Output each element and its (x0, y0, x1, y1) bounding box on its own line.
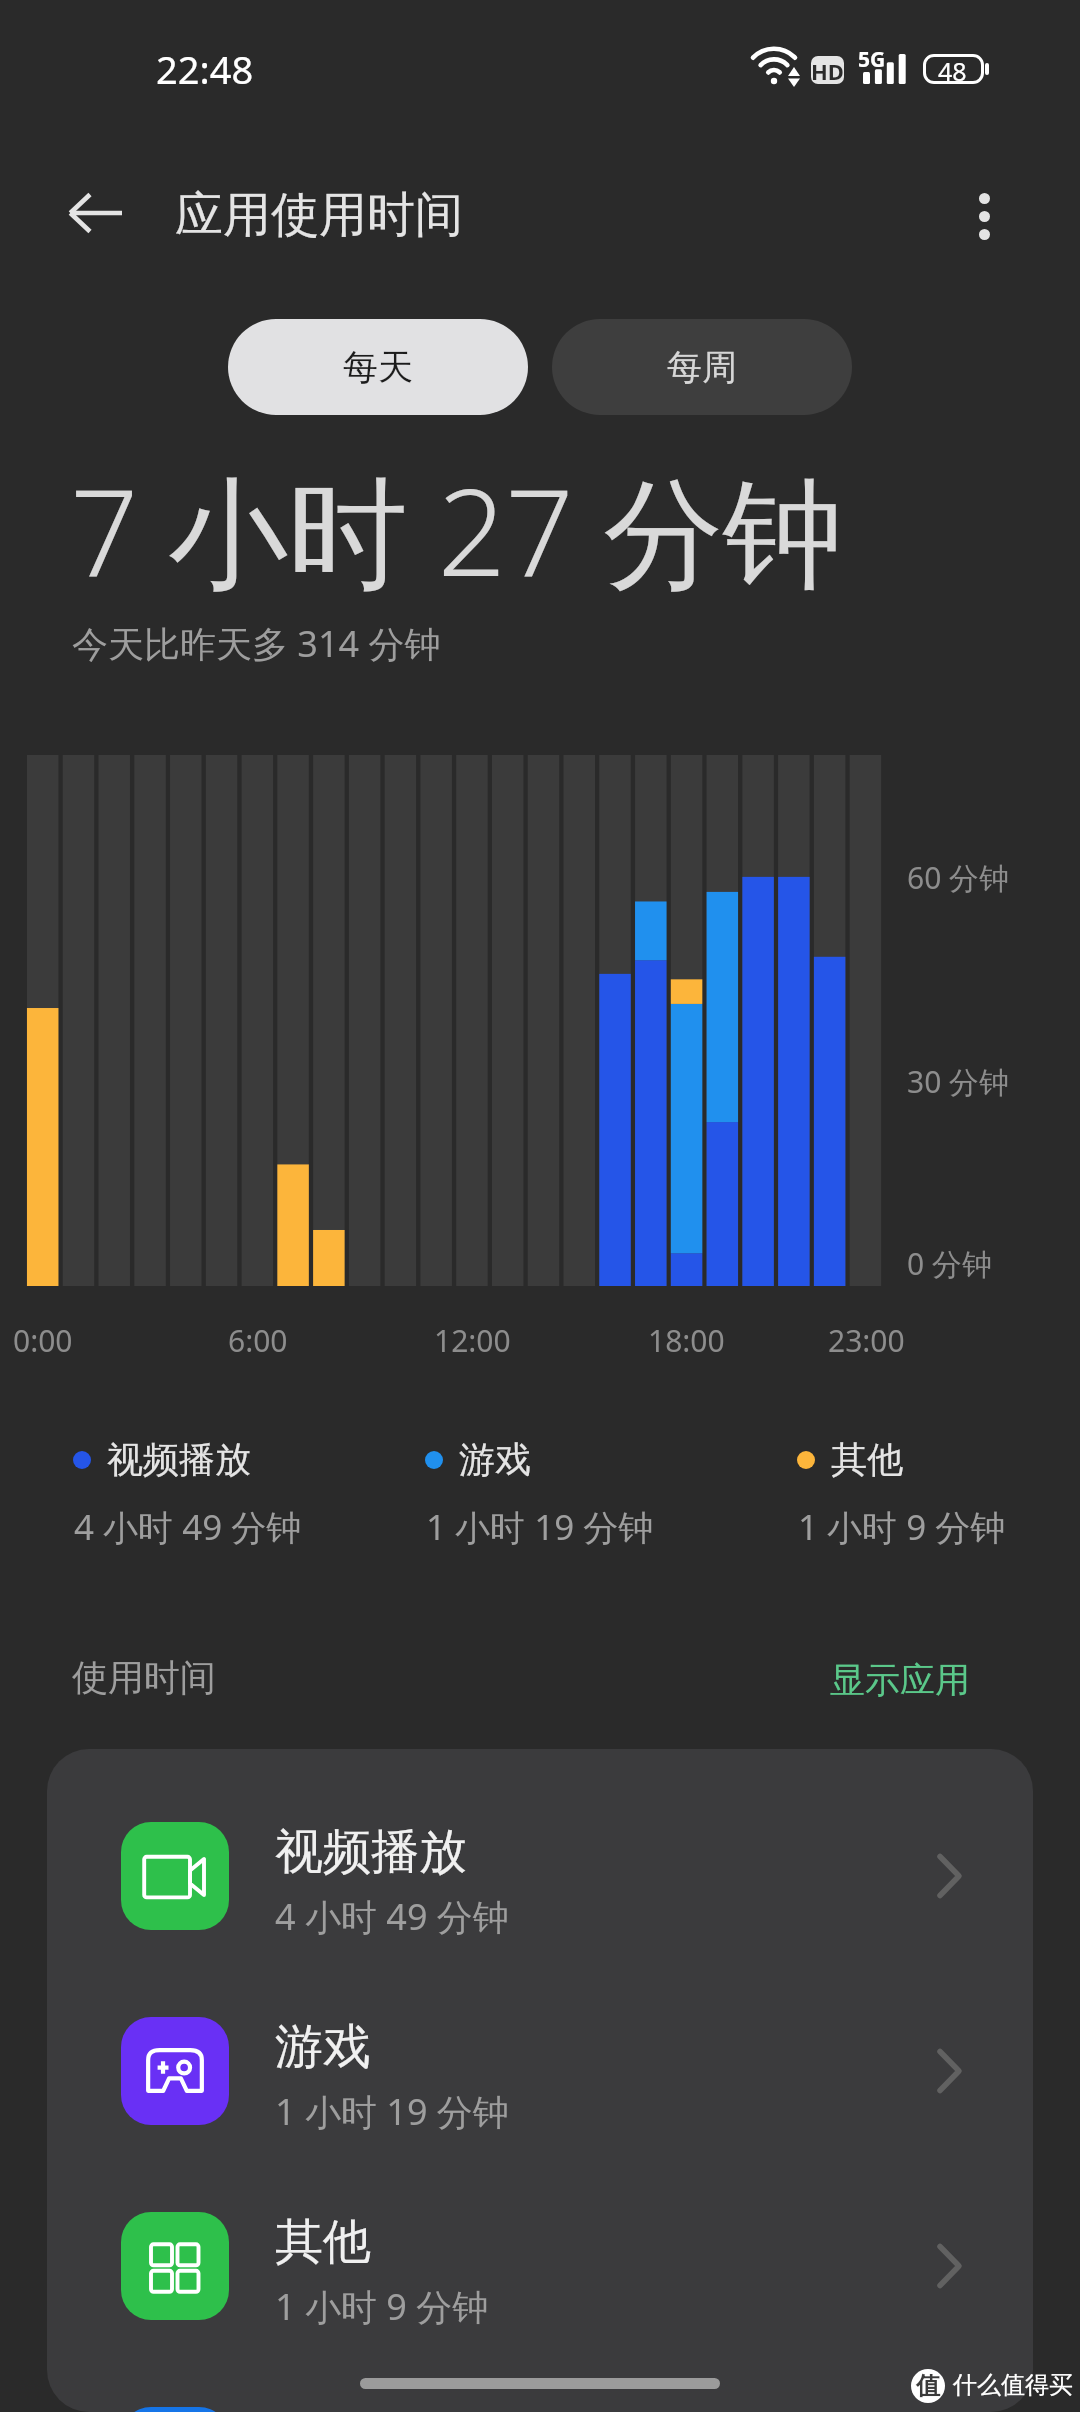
staticText: 22:48 (156, 43, 254, 95)
staticText: 1 小时 19 分钟 (275, 2087, 509, 2136)
staticText: 什么值得买 (953, 2370, 1073, 2400)
staticText: HD (811, 56, 844, 84)
staticText: 12:00 (434, 1320, 511, 1361)
staticText: 其他 (275, 2212, 371, 2272)
staticText: 48 (938, 54, 967, 84)
staticText: 显示应用 (830, 1658, 970, 1702)
button[interactable]: 视频播放 (47, 1778, 1033, 1973)
staticText: 值 (916, 2371, 940, 2401)
staticText: 每天 (343, 345, 413, 389)
staticText: 4 小时 49 分钟 (74, 1503, 302, 1551)
button[interactable]: 其他 (47, 2168, 1033, 2363)
staticText: 0:00 (13, 1320, 73, 1361)
staticText: 今天比昨天多 314 分钟 (72, 619, 441, 668)
staticText: 应用使用时间 (175, 185, 463, 245)
button[interactable]: More options (946, 178, 1022, 254)
staticText: 6:00 (228, 1320, 288, 1361)
button[interactable]: 每周 (552, 319, 852, 415)
staticText: 游戏 (275, 2017, 371, 2077)
staticText: 4 小时 49 分钟 (275, 1892, 509, 1941)
staticText: 23:00 (828, 1320, 905, 1361)
button[interactable]: 游戏 (47, 1973, 1033, 2168)
staticText: 使用时间 (72, 1655, 216, 1700)
staticText: 30 分钟 (907, 1061, 1010, 1102)
button[interactable]: 显示应用 (818, 1648, 982, 1712)
button[interactable]: 每天 (228, 319, 528, 415)
staticText: 每周 (667, 345, 737, 389)
staticText: 游戏 (459, 1437, 531, 1482)
staticText: 1 小时 19 分钟 (426, 1503, 654, 1551)
staticText: 7 小时 27 分钟 (70, 448, 843, 612)
staticText: 60 分钟 (907, 857, 1010, 898)
staticText: 1 小时 9 分钟 (798, 1503, 1006, 1551)
staticText: 其他 (831, 1437, 903, 1482)
staticText: 视频播放 (275, 1822, 467, 1882)
button[interactable]: Back (58, 176, 132, 250)
staticText: 18:00 (648, 1320, 725, 1361)
staticText: 5G (858, 45, 886, 74)
staticText: 0 分钟 (907, 1243, 992, 1284)
staticText: 视频播放 (107, 1437, 251, 1482)
staticText: 1 小时 9 分钟 (275, 2282, 489, 2331)
